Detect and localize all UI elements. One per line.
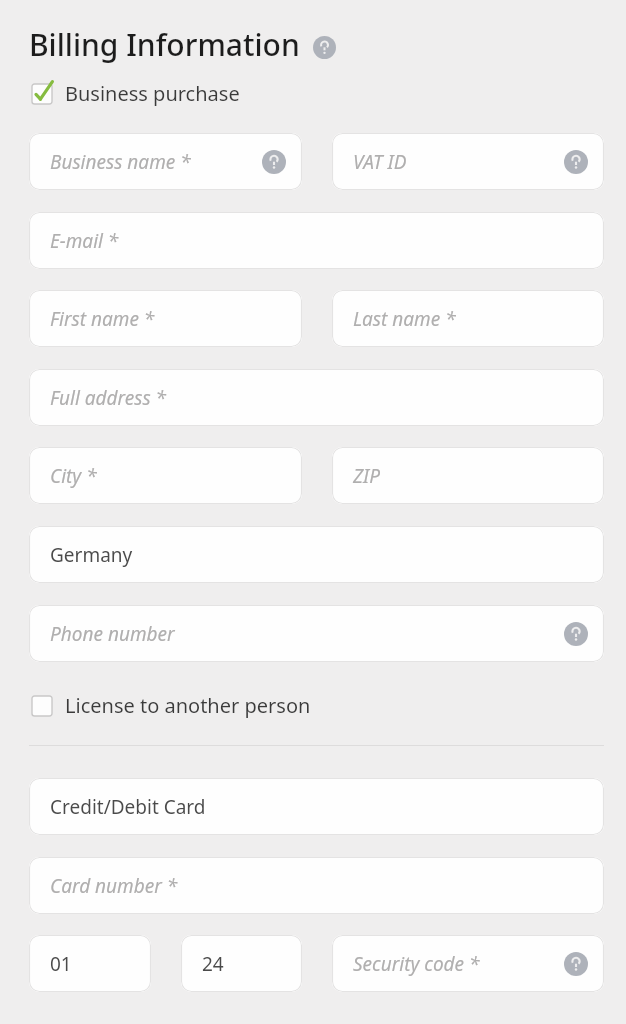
button[interactable]: Credit/Debit Card <box>29 778 604 835</box>
staticText: 24 <box>202 951 224 977</box>
staticText: Business name * <box>50 149 191 175</box>
button[interactable]: Business name * <box>29 133 302 190</box>
staticText: ZIP <box>353 463 381 489</box>
staticText: Billing Information <box>29 24 300 64</box>
button[interactable]: Help about VAT ID <box>564 150 588 174</box>
button[interactable]: Last name * <box>332 290 604 347</box>
staticText: License to another person <box>65 692 311 719</box>
button[interactable]: City * <box>29 447 302 504</box>
button[interactable]: VAT ID <box>332 133 604 190</box>
button[interactable]: Help about Phone number <box>564 622 588 646</box>
staticText: Card number * <box>50 873 178 899</box>
button[interactable]: ZIP <box>332 447 604 504</box>
button[interactable]: 24 <box>181 935 302 992</box>
button[interactable]: Business purchase <box>29 78 240 108</box>
staticText: Business purchase <box>65 80 240 107</box>
button[interactable]: Help about billing information <box>313 36 336 59</box>
button[interactable]: Card number * <box>29 857 604 914</box>
button[interactable]: Security code * <box>332 935 604 992</box>
button[interactable]: Help about Security code * <box>564 952 588 976</box>
button[interactable]: License to another person <box>29 690 311 720</box>
button[interactable]: Help about Business name * <box>262 150 286 174</box>
staticText: Phone number <box>50 621 175 647</box>
button[interactable]: 01 <box>29 935 151 992</box>
staticText: Security code * <box>353 951 480 977</box>
button[interactable]: Germany <box>29 526 604 583</box>
staticText: E-mail * <box>50 228 119 254</box>
button[interactable]: First name * <box>29 290 302 347</box>
button[interactable]: Phone number <box>29 605 604 662</box>
staticText: 01 <box>50 951 72 977</box>
staticText: Germany <box>50 542 133 568</box>
staticText: Credit/Debit Card <box>50 794 206 820</box>
button[interactable]: E-mail * <box>29 212 604 269</box>
staticText: Full address * <box>50 385 167 411</box>
button[interactable]: Full address * <box>29 369 604 426</box>
staticText: City * <box>50 463 97 489</box>
staticText: First name * <box>50 306 155 332</box>
staticText: VAT ID <box>353 149 407 175</box>
staticText: Last name * <box>353 306 456 332</box>
